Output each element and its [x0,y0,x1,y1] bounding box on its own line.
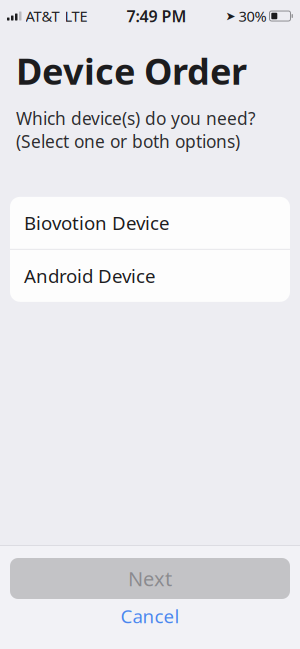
staticText: Biovotion Device [24,210,170,235]
staticText: Device Order [16,47,247,95]
staticText: LTE [64,6,87,26]
button[interactable]: Android Device [10,250,290,302]
staticText: AT&T [25,6,59,26]
button[interactable]: Next [10,558,290,599]
staticText: 30% [238,6,266,26]
button[interactable]: Biovotion Device [10,197,290,249]
staticText: Next [128,565,172,592]
staticText: ➤ [225,9,235,23]
staticText: Which device(s) do you need? (Select one… [16,107,256,153]
staticText: Cancel [120,604,179,628]
staticText: 7:49 PM [126,5,186,27]
button[interactable]: Cancel [10,599,290,633]
staticText: Android Device [24,263,156,288]
